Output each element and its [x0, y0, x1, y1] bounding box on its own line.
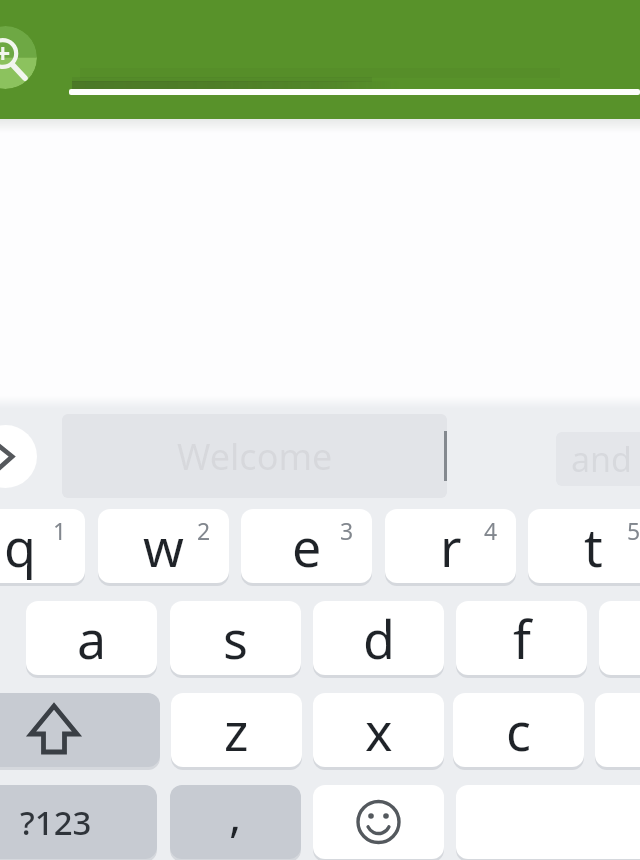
button[interactable] — [313, 785, 444, 859]
staticText: f — [513, 603, 531, 674]
staticText: d — [363, 603, 395, 674]
button[interactable]: q — [0, 509, 85, 583]
staticText: , — [229, 785, 242, 846]
staticText: q — [4, 511, 36, 582]
button[interactable] — [0, 693, 160, 767]
button[interactable]: a — [26, 601, 157, 675]
button[interactable]: f — [456, 601, 587, 675]
button[interactable] — [0, 425, 37, 488]
staticText: 4 — [484, 515, 498, 546]
button[interactable]: r — [385, 509, 516, 583]
button[interactable]: w — [98, 509, 229, 583]
button[interactable]: c — [453, 693, 584, 767]
staticText: ?123 — [20, 800, 92, 845]
staticText: z — [224, 695, 249, 766]
button[interactable]: z — [171, 693, 302, 767]
button[interactable]: d — [313, 601, 444, 675]
button[interactable]: , — [170, 785, 301, 859]
button[interactable]: g — [599, 601, 640, 675]
button[interactable]: t — [528, 509, 640, 583]
staticText: x — [365, 695, 393, 766]
button[interactable]: e — [241, 509, 372, 583]
button[interactable]: s — [170, 601, 301, 675]
staticText: and — [571, 436, 632, 482]
staticText: 2 — [197, 515, 211, 546]
staticText: Welcome — [177, 432, 333, 481]
staticText: e — [292, 511, 322, 582]
button[interactable]: v — [595, 693, 640, 767]
button[interactable]: ?123 — [0, 785, 157, 859]
staticText: 5 — [627, 515, 640, 546]
staticText: t — [584, 511, 603, 582]
staticText: s — [223, 603, 248, 674]
staticText: r — [440, 511, 462, 582]
button[interactable] — [0, 26, 37, 89]
staticText: 3 — [340, 515, 354, 546]
staticText: w — [143, 511, 184, 582]
staticText: 1 — [53, 515, 67, 546]
button[interactable]: x — [313, 693, 444, 767]
staticText: c — [506, 695, 531, 766]
staticText: a — [77, 603, 107, 674]
button[interactable]: Welcome — [62, 414, 447, 498]
